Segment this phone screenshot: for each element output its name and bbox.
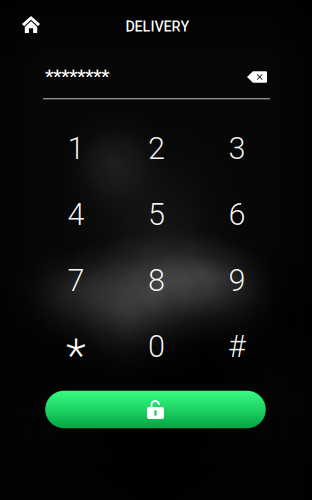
staticText: # [228, 329, 246, 364]
button[interactable]: # [197, 314, 277, 380]
staticText: ******** [45, 65, 109, 87]
button[interactable]: 4 [36, 182, 116, 248]
staticText: 8 [148, 263, 165, 298]
button[interactable]: 9 [197, 248, 277, 314]
staticText: 1 [67, 131, 84, 166]
button[interactable]: Home [11, 7, 51, 41]
staticText: DELIVERY [125, 18, 189, 35]
staticText: 6 [228, 197, 245, 232]
button[interactable]: 0 [116, 314, 197, 380]
button[interactable]: 8 [116, 248, 197, 314]
button[interactable]: 1 [36, 116, 116, 182]
button[interactable]: Delete [239, 63, 275, 91]
button[interactable]: 6 [197, 182, 277, 248]
staticText: 5 [148, 197, 165, 232]
staticText: 4 [67, 197, 84, 232]
button[interactable]: 3 [197, 116, 277, 182]
staticText: 2 [148, 131, 165, 166]
button[interactable]: 7 [36, 248, 116, 314]
staticText: * [66, 328, 86, 383]
staticText: 9 [228, 263, 245, 298]
staticText: 7 [67, 263, 84, 298]
staticText: 0 [148, 329, 165, 364]
button[interactable]: 2 [116, 116, 197, 182]
staticText: 3 [228, 131, 245, 166]
button[interactable]: * [36, 314, 116, 380]
button[interactable]: 5 [116, 182, 197, 248]
button[interactable]: Unlock [45, 391, 266, 428]
